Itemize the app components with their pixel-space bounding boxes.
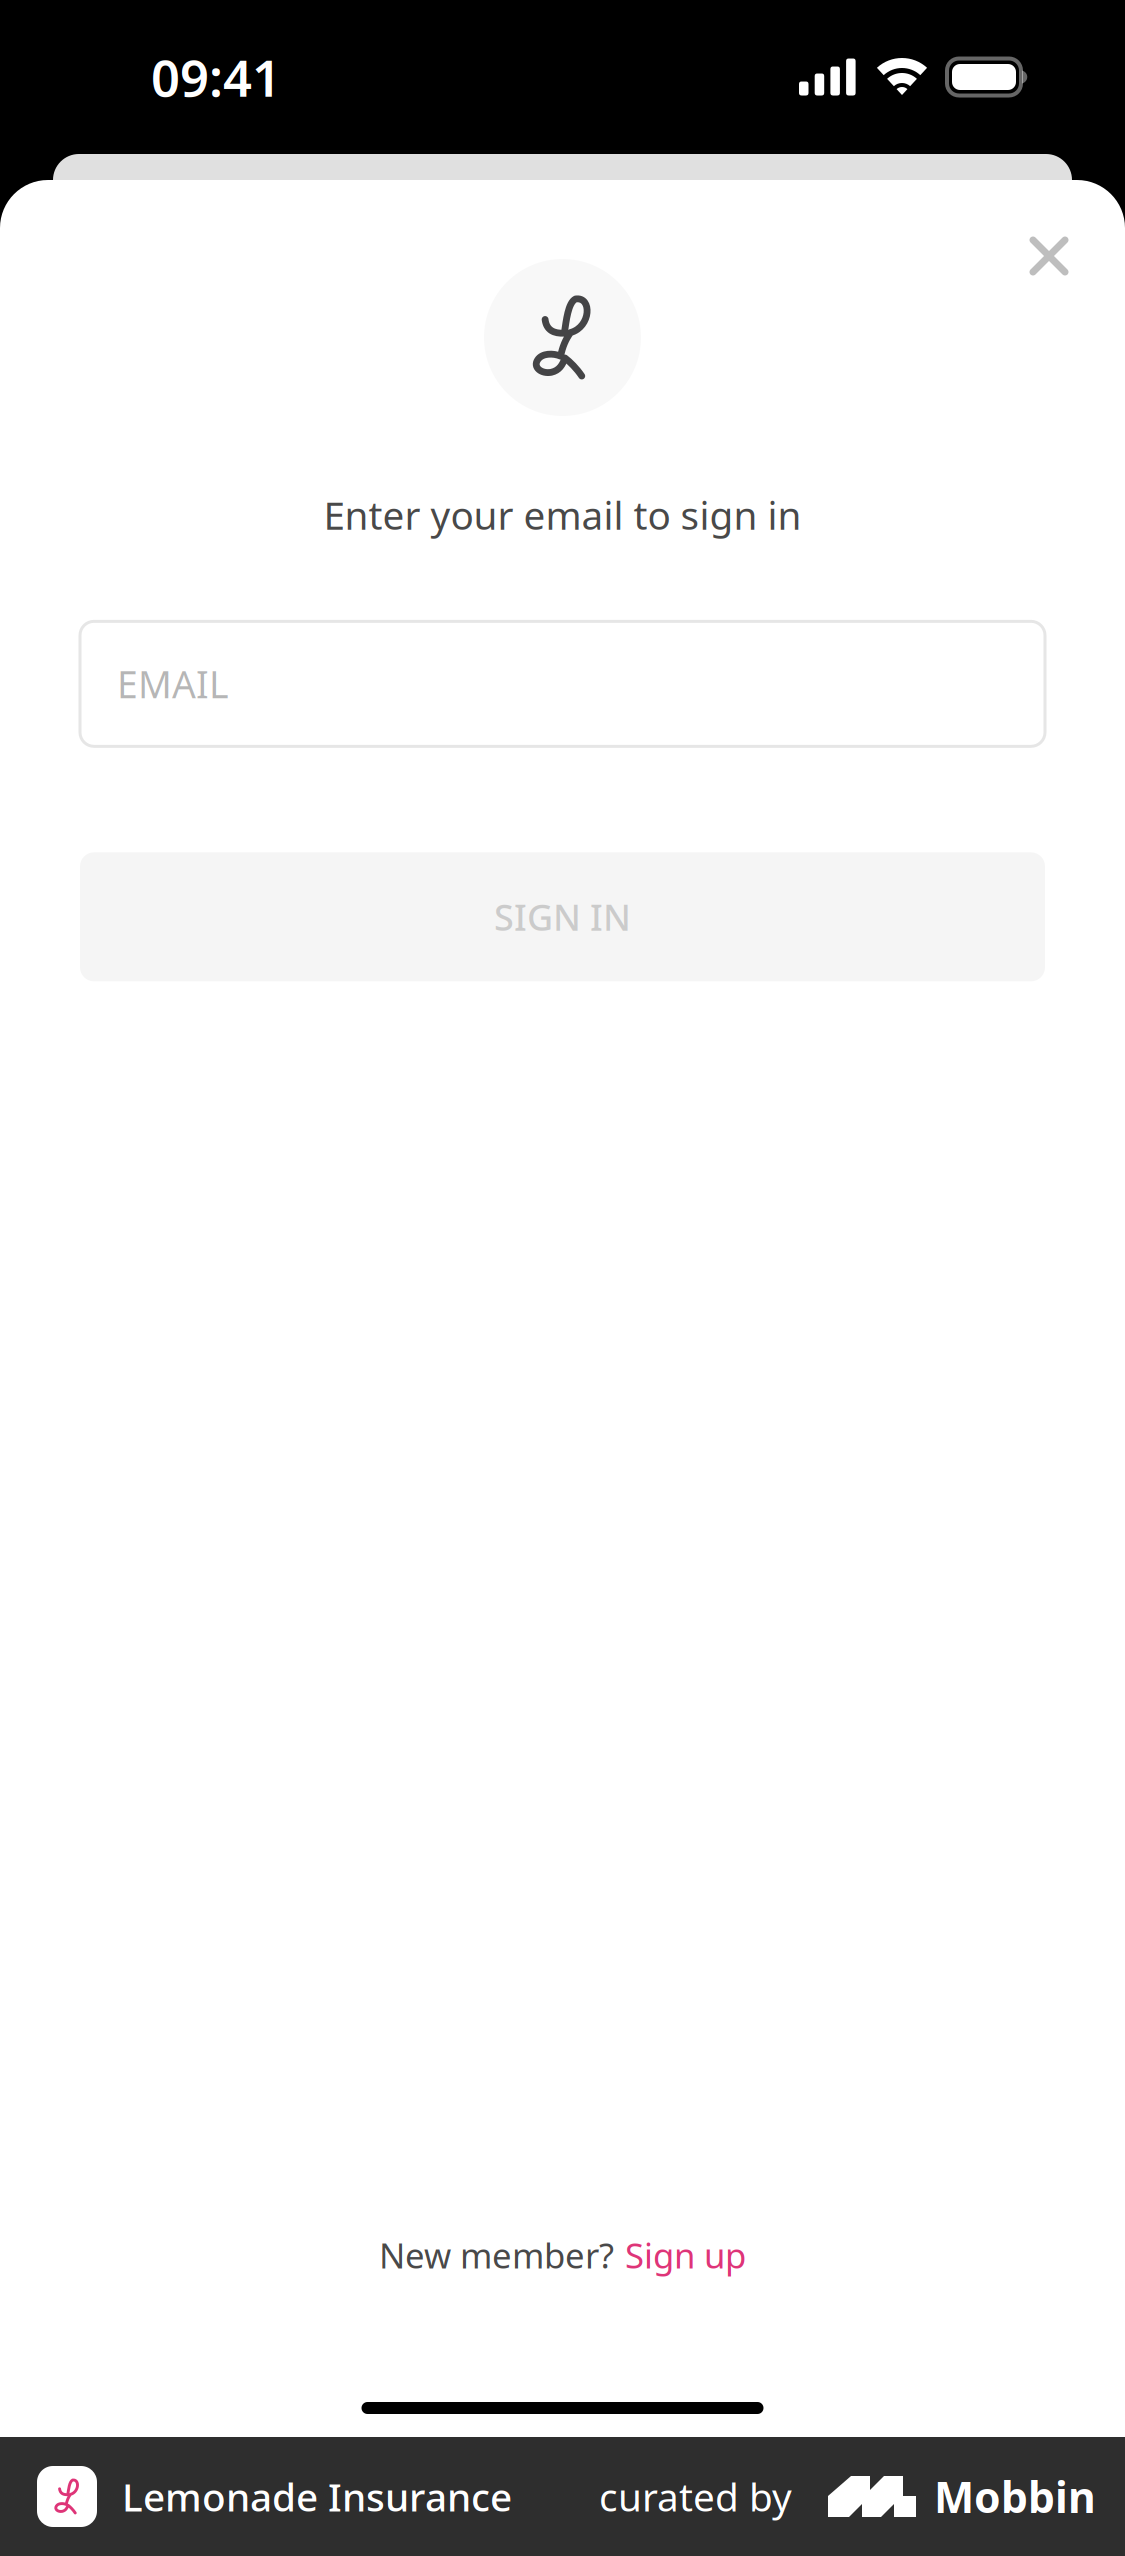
staticText: SIGN IN: [494, 893, 631, 941]
staticText: 09:41: [151, 43, 281, 111]
staticText: New member?: [379, 2232, 614, 2278]
staticText: curated by: [599, 2471, 792, 2522]
staticText: EMAIL: [117, 659, 229, 709]
staticText: Lemonade Insurance: [122, 2471, 512, 2522]
button[interactable]: New member?: [361, 2214, 764, 2296]
staticText: Sign up: [625, 2232, 746, 2278]
staticText: Mobbin: [934, 2468, 1096, 2525]
button[interactable]: EMAIL: [80, 621, 1045, 746]
button[interactable]: Close: [1001, 180, 1097, 304]
button[interactable]: SIGN IN: [80, 852, 1045, 981]
staticText: Enter your email to sign in: [323, 489, 801, 540]
